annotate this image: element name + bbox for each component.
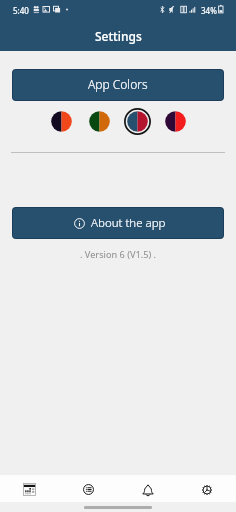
button[interactable]: Overview (59, 475, 118, 504)
button[interactable]: About the app (13, 208, 223, 238)
staticText: App Colors (88, 76, 148, 92)
staticText: About the app (91, 215, 166, 231)
button[interactable]: Settings (177, 475, 236, 504)
button[interactable]: Colour theme (86, 108, 113, 135)
button[interactable]: Calendar (0, 475, 59, 504)
button[interactable]: Colour theme (162, 108, 189, 135)
button[interactable]: Colour theme (48, 108, 75, 135)
staticText: Settings (95, 28, 142, 44)
button[interactable]: Notifications (118, 475, 177, 504)
staticText: . Version 6 (V1.5) . (0, 248, 236, 261)
staticText: 34% (201, 5, 217, 16)
staticText: 5:40 (13, 5, 29, 16)
button[interactable]: Colour theme (124, 108, 151, 135)
button[interactable]: App Colors (13, 70, 223, 100)
